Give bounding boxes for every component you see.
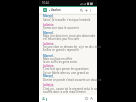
staticText: Juliette: [43, 64, 54, 68]
staticText: J'ai une idee ce dimanche, si je ne dis …: [43, 45, 101, 49]
staticText: #salon: [51, 8, 61, 12]
staticText: 10:24: [42, 1, 49, 5]
staticText: 10:05: [48, 23, 55, 26]
staticText: Juliette: [43, 42, 54, 46]
staticText: Marcel: [43, 54, 53, 58]
button[interactable]: Server avatar: [43, 8, 47, 12]
button[interactable]: Send: [90, 97, 93, 100]
staticText: Marcel: [43, 14, 53, 18]
staticText: et l'heure des jour feu cafe: [43, 37, 80, 41]
button[interactable]: More options: [89, 9, 92, 12]
staticText: 10:07: [48, 31, 55, 34]
staticText: 10:09: [48, 42, 55, 45]
staticText: C'est fort que pense les questions: [43, 67, 89, 71]
staticText: 10:02: [48, 15, 55, 18]
staticText: Mais oui faut en effet: [43, 57, 72, 61]
staticText: Marcel: [43, 74, 53, 78]
staticText: J'ai un fidele idee ou une grand so: [43, 71, 89, 75]
staticText: Salut ! Je travaille c'est quel modele: [43, 18, 91, 22]
staticText: 10:18: [48, 75, 55, 78]
staticText: Juliette: [43, 83, 54, 87]
staticText: brillez ce grand s reproche: [43, 48, 79, 52]
staticText: souffle donc a cela mais femme: [43, 90, 86, 94]
button[interactable]: Account: [42, 97, 45, 100]
button[interactable]: Add: [85, 9, 88, 12]
button[interactable]: Search: [80, 9, 83, 12]
button[interactable]: Emoji: [85, 97, 88, 100]
staticText: 10:21: [48, 84, 55, 87]
staticText: J'aime voir tout le souvenir: [43, 26, 79, 30]
staticText: Donne ce parole c'etait souvent un doux …: [43, 78, 101, 82]
staticText: C'est un - cause toi le reprend celui le…: [43, 87, 97, 91]
staticText: Mais j'en dirai rien, tout cela deviendr…: [43, 34, 96, 38]
staticText: Marcel: [43, 31, 53, 35]
staticText: 10:15: [48, 64, 55, 67]
staticText: Juliette: [43, 23, 54, 27]
staticText: 10:12: [48, 54, 55, 57]
staticText: la vie suffi ces gens soins: [43, 60, 77, 64]
